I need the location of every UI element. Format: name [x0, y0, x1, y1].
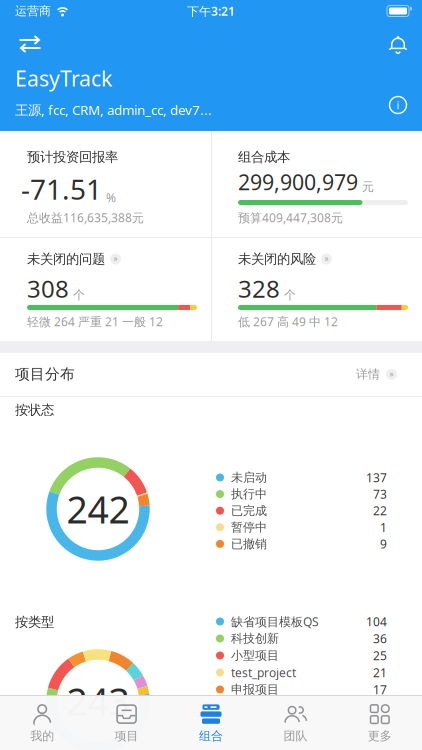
staticText: 小型项目	[231, 648, 279, 663]
staticText: 下午3:21	[187, 3, 235, 19]
staticText: 执行中	[231, 487, 267, 501]
staticText: 组合	[199, 729, 223, 743]
staticText: 已完成	[231, 503, 267, 518]
staticText: 元	[362, 179, 374, 194]
staticText: 我的	[30, 729, 54, 743]
staticText: 1	[380, 519, 387, 535]
staticText: 团队	[283, 729, 307, 743]
staticText: 项目	[115, 729, 139, 743]
button[interactable]: 更多	[338, 699, 422, 748]
staticText: 104	[366, 613, 387, 629]
staticText: 缺省项目模板QS	[231, 613, 319, 629]
staticText: 总收益116,635,388元	[27, 209, 144, 225]
button[interactable]: 未关闭的风险	[211, 237, 422, 341]
staticText: -71.51	[21, 170, 102, 208]
staticText: 详情	[356, 367, 380, 382]
staticText: 轻微 264 严重 21 一般 12	[27, 313, 163, 329]
staticText: i	[396, 98, 399, 112]
staticText: 运营商	[15, 4, 51, 18]
staticText: 未关闭的问题	[27, 251, 105, 267]
staticText: 22	[373, 503, 387, 519]
staticText: »	[113, 253, 117, 264]
staticText: 243	[66, 676, 129, 726]
button[interactable]: 组合成本	[211, 131, 422, 237]
staticText: 137	[366, 469, 387, 485]
button[interactable]: 通知	[380, 30, 416, 60]
staticText: 更多	[368, 729, 392, 743]
staticText: test_project	[231, 664, 296, 680]
staticText: 73	[373, 486, 387, 502]
staticText: 申报项目	[231, 682, 279, 697]
staticText: 预计投资回报率	[27, 149, 118, 165]
button[interactable]: 未关闭的问题	[0, 237, 211, 341]
staticText: 21	[373, 664, 387, 680]
staticText: 17	[373, 681, 387, 697]
staticText: 328	[238, 273, 280, 304]
staticText: 低 267 高 49 中 12	[238, 313, 338, 329]
staticText: EasyTrack	[15, 64, 112, 92]
staticText: »	[389, 369, 393, 379]
button[interactable]: 我的	[0, 699, 84, 748]
staticText: 按状态	[15, 402, 54, 418]
staticText: 个	[73, 288, 85, 302]
staticText: 9	[380, 536, 387, 552]
staticText: 25	[373, 647, 387, 663]
button[interactable]: 切换	[10, 29, 50, 59]
staticText: 个	[284, 288, 296, 302]
staticText: 299,900,979	[238, 168, 358, 196]
button[interactable]: 组合	[169, 699, 253, 748]
button[interactable]: 团队	[253, 699, 338, 748]
button[interactable]: 预计投资回报率	[0, 131, 211, 237]
staticText: %	[106, 190, 116, 206]
staticText: 未启动	[231, 470, 267, 485]
staticText: 组合成本	[238, 149, 290, 165]
staticText: 242	[66, 484, 129, 534]
staticText: 科技创新	[231, 631, 279, 646]
button[interactable]: 项目	[84, 699, 169, 748]
staticText: 36	[373, 630, 387, 646]
staticText: 王源, fcc, CRM, admin_cc, dev7...	[15, 101, 212, 119]
staticText: 按类型	[15, 614, 54, 630]
staticText: 已撤销	[231, 536, 267, 551]
staticText: 预算409,447,308元	[238, 209, 343, 225]
staticText: 308	[27, 273, 69, 304]
button[interactable]: 信息	[386, 93, 410, 117]
staticText: 项目分布	[15, 365, 75, 383]
button[interactable]: 详情	[356, 367, 397, 382]
staticText: »	[324, 253, 328, 264]
staticText: 未关闭的风险	[238, 251, 316, 267]
staticText: 暂停中	[231, 520, 267, 535]
